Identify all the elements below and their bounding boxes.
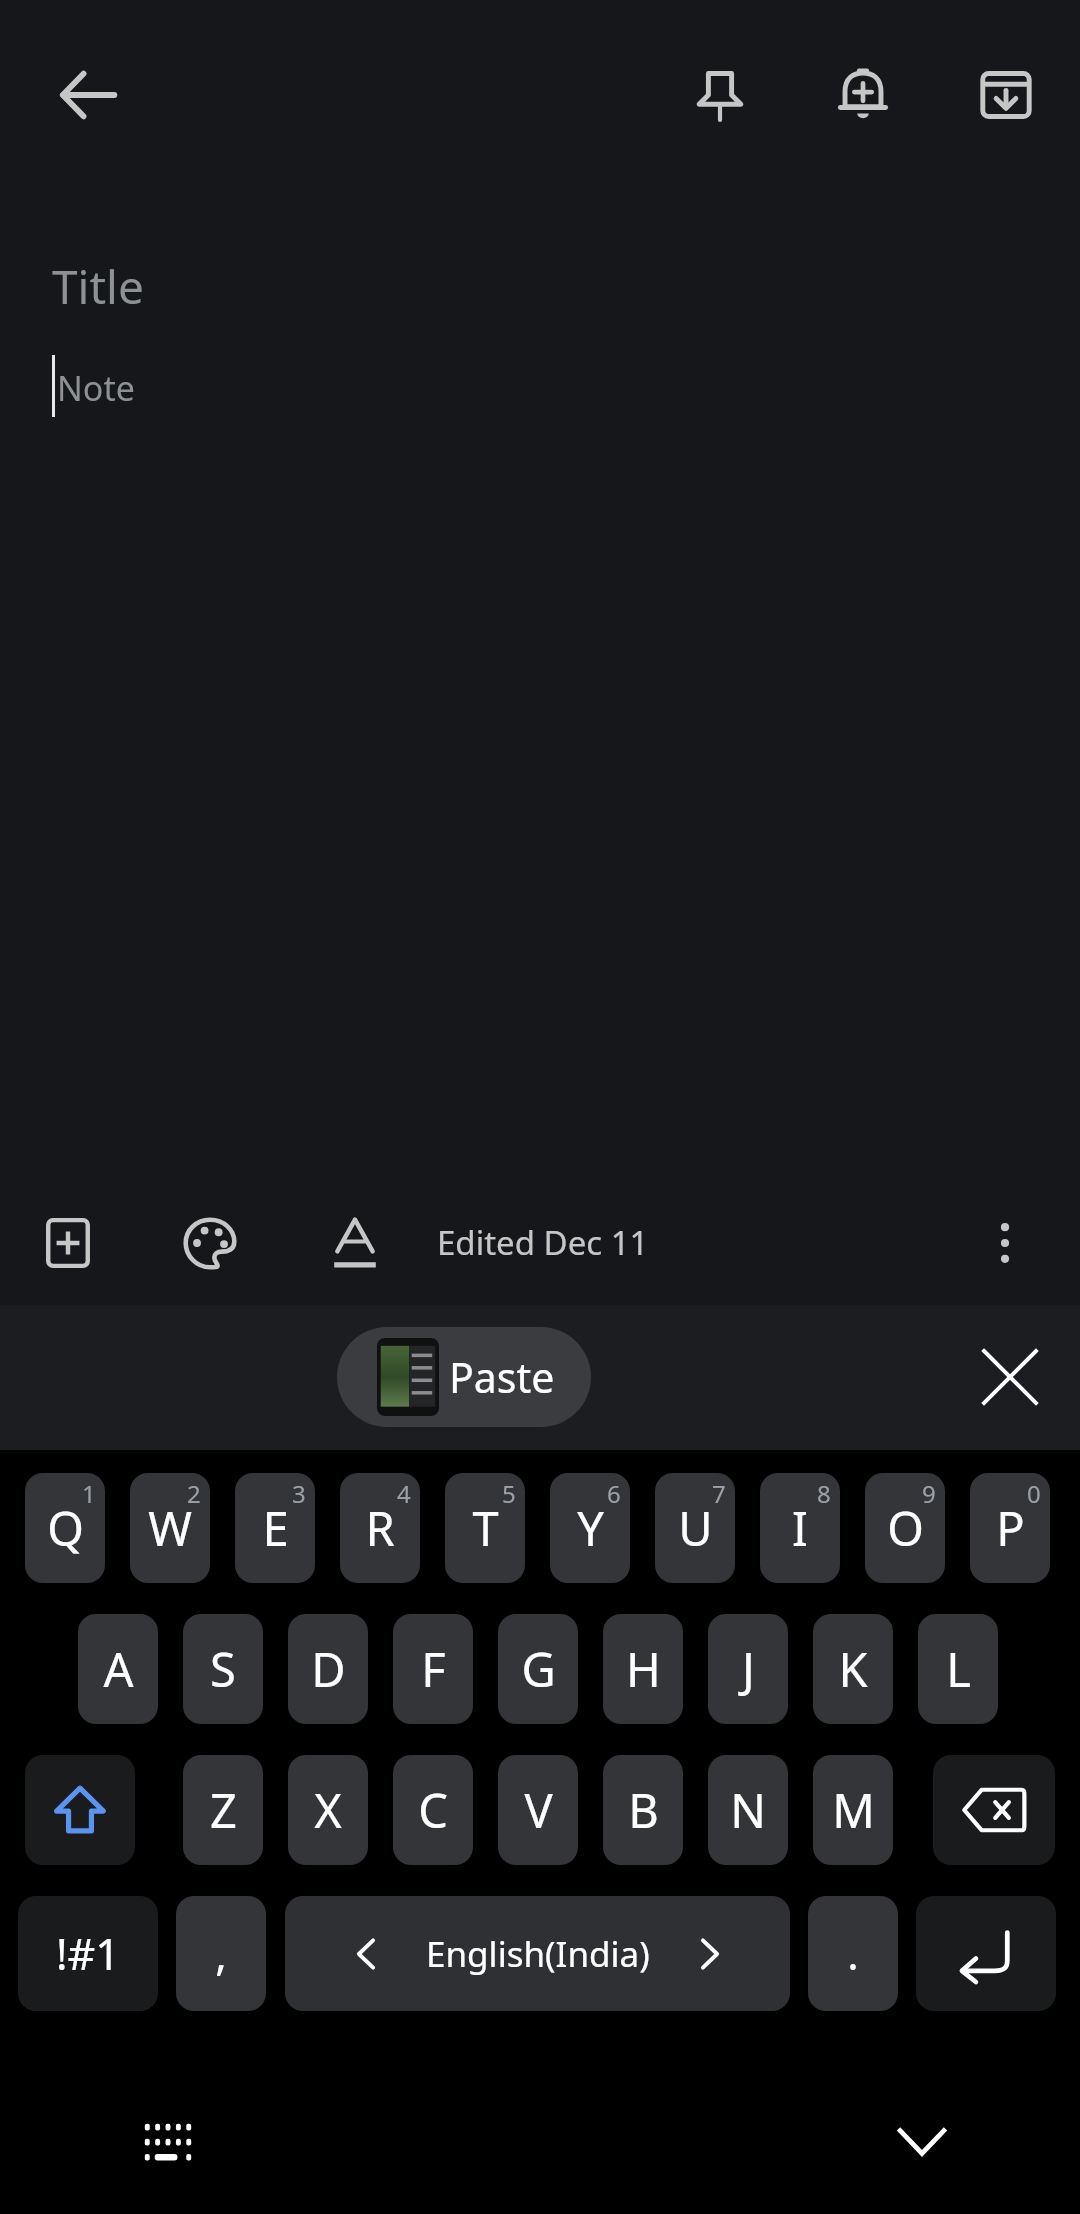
staticText: A: [103, 1637, 134, 1701]
staticText: L: [946, 1637, 971, 1701]
button[interactable]: S: [183, 1614, 263, 1724]
button[interactable]: Title: [52, 255, 952, 335]
button[interactable]: F: [393, 1614, 473, 1724]
button[interactable]: .: [808, 1896, 898, 2011]
button[interactable]: Formatting: [305, 1193, 405, 1293]
button[interactable]: Switch keyboard: [118, 2090, 218, 2190]
staticText: H: [626, 1637, 661, 1701]
button[interactable]: W: [130, 1473, 210, 1583]
button[interactable]: O: [865, 1473, 945, 1583]
button[interactable]: Symbols: [18, 1896, 158, 2011]
button[interactable]: N: [708, 1755, 788, 1865]
staticText: F: [421, 1637, 446, 1701]
staticText: 0: [1027, 1477, 1041, 1510]
staticText: X: [314, 1778, 342, 1842]
button[interactable]: T: [445, 1473, 525, 1583]
staticText: M: [832, 1778, 875, 1842]
button[interactable]: I: [760, 1473, 840, 1583]
button[interactable]: L: [918, 1614, 998, 1724]
staticText: I: [792, 1496, 808, 1560]
button[interactable]: A: [78, 1614, 158, 1724]
button[interactable]: Shift: [25, 1755, 135, 1865]
button[interactable]: R: [340, 1473, 420, 1583]
staticText: !#1: [56, 1924, 120, 1983]
button[interactable]: Z: [183, 1755, 263, 1865]
button[interactable]: ,: [176, 1896, 266, 2011]
button[interactable]: V: [498, 1755, 578, 1865]
button[interactable]: X: [288, 1755, 368, 1865]
button[interactable]: Pin note: [660, 35, 780, 155]
staticText: D: [311, 1637, 346, 1701]
button[interactable]: E: [235, 1473, 315, 1583]
staticText: 2: [187, 1477, 201, 1510]
button[interactable]: J: [708, 1614, 788, 1724]
button[interactable]: H: [603, 1614, 683, 1724]
staticText: ,: [215, 1924, 227, 1983]
staticText: K: [838, 1637, 868, 1701]
staticText: G: [521, 1637, 556, 1701]
button[interactable]: Y: [550, 1473, 630, 1583]
button[interactable]: Background options: [160, 1193, 260, 1293]
button[interactable]: Dismiss suggestion: [960, 1327, 1060, 1427]
staticText: U: [678, 1496, 713, 1560]
button[interactable]: Archive: [946, 35, 1066, 155]
staticText: W: [148, 1496, 192, 1560]
button[interactable]: G: [498, 1614, 578, 1724]
staticText: Q: [47, 1496, 84, 1560]
button[interactable]: Add attachment: [18, 1193, 118, 1293]
staticText: 1: [82, 1477, 96, 1510]
staticText: V: [524, 1778, 553, 1842]
button[interactable]: More options: [955, 1193, 1055, 1293]
staticText: Title: [52, 255, 144, 318]
button[interactable]: Hide keyboard: [872, 2090, 972, 2190]
staticText: .: [847, 1924, 859, 1983]
button[interactable]: P: [970, 1473, 1050, 1583]
staticText: 8: [817, 1477, 831, 1510]
staticText: C: [418, 1778, 448, 1842]
staticText: 9: [922, 1477, 936, 1510]
button[interactable]: Paste: [337, 1327, 591, 1427]
staticText: B: [628, 1778, 659, 1842]
staticText: Edited Dec 11: [437, 1220, 649, 1265]
button[interactable]: C: [393, 1755, 473, 1865]
button[interactable]: Add reminder: [803, 35, 923, 155]
button[interactable]: Q: [25, 1473, 105, 1583]
staticText: Z: [210, 1778, 237, 1842]
button[interactable]: Space, English(India): [285, 1896, 790, 2011]
button[interactable]: K: [813, 1614, 893, 1724]
staticText: 3: [292, 1477, 306, 1510]
staticText: N: [730, 1778, 766, 1842]
staticText: J: [742, 1637, 755, 1701]
staticText: 5: [502, 1477, 516, 1510]
staticText: O: [887, 1496, 924, 1560]
button[interactable]: B: [603, 1755, 683, 1865]
button[interactable]: Note: [52, 353, 952, 423]
staticText: E: [262, 1496, 289, 1560]
staticText: 7: [712, 1477, 726, 1510]
button[interactable]: Back: [28, 35, 148, 155]
button[interactable]: D: [288, 1614, 368, 1724]
staticText: 6: [607, 1477, 621, 1510]
staticText: 4: [397, 1477, 411, 1510]
staticText: Paste: [449, 1349, 555, 1405]
staticText: R: [365, 1496, 395, 1560]
staticText: P: [996, 1496, 1025, 1560]
staticText: English(India): [426, 1930, 650, 1978]
staticText: S: [210, 1637, 236, 1701]
button[interactable]: Enter: [916, 1896, 1056, 2011]
button[interactable]: U: [655, 1473, 735, 1583]
staticText: T: [472, 1496, 499, 1560]
button[interactable]: M: [813, 1755, 893, 1865]
staticText: Y: [577, 1496, 604, 1560]
staticText: Note: [57, 365, 135, 411]
button[interactable]: Backspace: [933, 1755, 1055, 1865]
